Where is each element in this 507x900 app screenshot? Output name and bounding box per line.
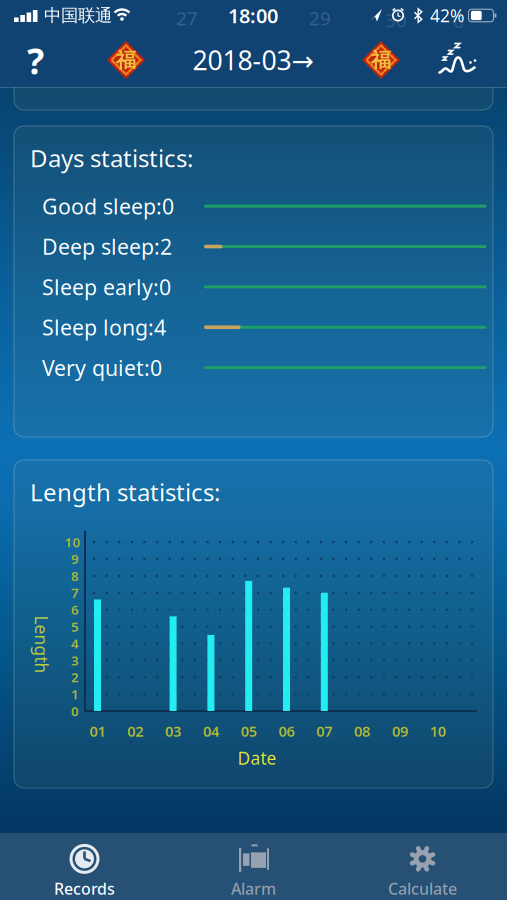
staticText: 福 [371, 48, 391, 72]
staticText: 10 [430, 721, 446, 741]
button[interactable]: Sleep [429, 38, 481, 82]
staticText: ? [27, 37, 44, 84]
staticText: Deep sleep:2 [42, 232, 172, 261]
staticText: 3 [71, 651, 79, 669]
staticText: 02 [127, 721, 143, 741]
staticText: Length statistics: [30, 476, 220, 508]
staticText: 10 [64, 533, 80, 551]
staticText: Calculate [388, 878, 457, 899]
button[interactable]: Calculate [338, 843, 507, 899]
staticText: 0 [71, 702, 79, 720]
staticText: Length [12, 633, 70, 656]
button[interactable]: 2018-03→ [192, 42, 313, 78]
staticText: 6 [71, 601, 79, 618]
staticText: Good sleep:0 [42, 192, 174, 220]
button[interactable]: Alarm [169, 843, 338, 899]
staticText: Days statistics: [30, 142, 193, 174]
staticText: 05 [241, 721, 257, 741]
staticText: 5 [71, 618, 79, 635]
staticText: 中国联通 [44, 5, 112, 26]
staticText: Very quiet:0 [42, 353, 162, 382]
staticText: 8 [71, 567, 79, 585]
button[interactable]: Previous month [104, 38, 148, 82]
staticText: 09 [392, 721, 408, 741]
staticText: 01 [89, 721, 105, 741]
button[interactable]: Next month [359, 38, 403, 82]
staticText: 08 [354, 721, 370, 741]
staticText: 1 [71, 685, 79, 703]
staticText: 7 [71, 584, 79, 601]
staticText: 07 [316, 721, 332, 741]
staticText: 04 [203, 721, 219, 741]
staticText: Sleep early:0 [42, 273, 171, 301]
staticText: 9 [71, 550, 79, 568]
staticText: 03 [165, 721, 181, 741]
staticText: 福 [116, 48, 136, 72]
staticText: 2018-03→ [192, 42, 313, 78]
staticText: 27 [176, 6, 198, 30]
staticText: 4 [71, 634, 79, 652]
staticText: Records [54, 878, 115, 899]
staticText: Date [237, 746, 276, 769]
staticText: 42% [430, 4, 464, 27]
button[interactable]: Help [13, 38, 57, 82]
staticText: 29 [309, 6, 331, 30]
staticText: 0 [453, 9, 464, 33]
staticText: 2 [71, 668, 79, 686]
staticText: 06 [278, 721, 294, 741]
staticText: 30 [385, 8, 407, 32]
staticText: Sleep long:4 [42, 313, 166, 341]
staticText: Alarm [231, 878, 276, 899]
staticText: 18:00 [228, 2, 278, 29]
button[interactable]: Records [0, 843, 169, 899]
